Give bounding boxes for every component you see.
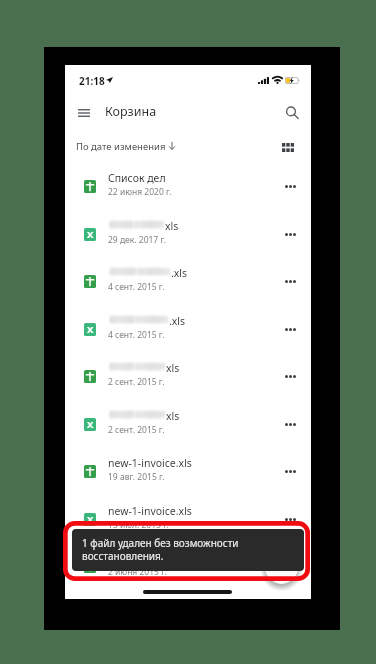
button[interactable]: More options [278, 507, 302, 531]
button[interactable]: More options [278, 412, 302, 436]
staticText: xls [166, 409, 180, 423]
button[interactable]: new-1-invoice.xls [65, 543, 311, 591]
staticText: 2 сент. 2015 г. [108, 376, 165, 388]
staticText: 22 июня 2020 г. [108, 186, 172, 198]
staticText: Список дел [108, 171, 166, 185]
staticText: 1 файл удален без возможности восстановл… [82, 536, 239, 563]
button[interactable]: More options [278, 364, 302, 388]
button[interactable]: Search [279, 99, 303, 123]
button[interactable]: Open navigation menu [71, 100, 96, 125]
button[interactable]: X [65, 211, 311, 259]
staticText: new-1-invoice.xls [108, 456, 192, 470]
button[interactable]: new-1-invoice.xls [65, 448, 311, 496]
button[interactable]: 1 файл удален без возможности восстановл… [72, 529, 304, 571]
staticText: 29 дек. 2017 г. [108, 234, 167, 246]
staticText: xls [165, 219, 179, 233]
button[interactable]: More options [278, 459, 302, 483]
button[interactable]: More options [278, 269, 302, 293]
staticText: new-1-invoice.xls [108, 504, 192, 518]
button[interactable]: По дате изменения [72, 136, 170, 156]
staticText: X [87, 323, 94, 336]
staticText: .xls [171, 266, 188, 280]
staticText: .xls [169, 314, 186, 328]
button[interactable]: .xls [65, 258, 311, 306]
button[interactable]: More options [278, 174, 302, 198]
staticText: X [87, 418, 94, 431]
staticText: Корзина [105, 103, 157, 120]
staticText: 4 сент. 2015 г. [108, 281, 165, 293]
button[interactable]: Switch to grid view [277, 136, 299, 158]
button[interactable]: X [65, 306, 311, 354]
button[interactable]: Список дел [65, 163, 311, 211]
button[interactable]: xls [65, 353, 311, 401]
staticText: По дате изменения [76, 140, 166, 153]
staticText: 2 июня 2015 г. [108, 566, 167, 578]
staticText: 19 авг. 2015 г. [108, 471, 165, 483]
button[interactable]: X [65, 496, 311, 544]
staticText: xls [166, 361, 180, 375]
staticText: 2 сент. 2015 г. [108, 424, 165, 436]
button[interactable]: More options [278, 554, 302, 578]
button[interactable]: More options [278, 317, 302, 341]
button[interactable]: X [65, 401, 311, 449]
staticText: 4 сент. 2015 г. [108, 329, 165, 341]
staticText: X [87, 513, 94, 526]
staticText: X [87, 228, 94, 241]
staticText: 21:18 [79, 74, 105, 88]
button[interactable]: More options [278, 222, 302, 246]
staticText: 15 июл. 2015 г. [108, 519, 169, 531]
staticText: new-1-invoice.xls [108, 551, 192, 565]
